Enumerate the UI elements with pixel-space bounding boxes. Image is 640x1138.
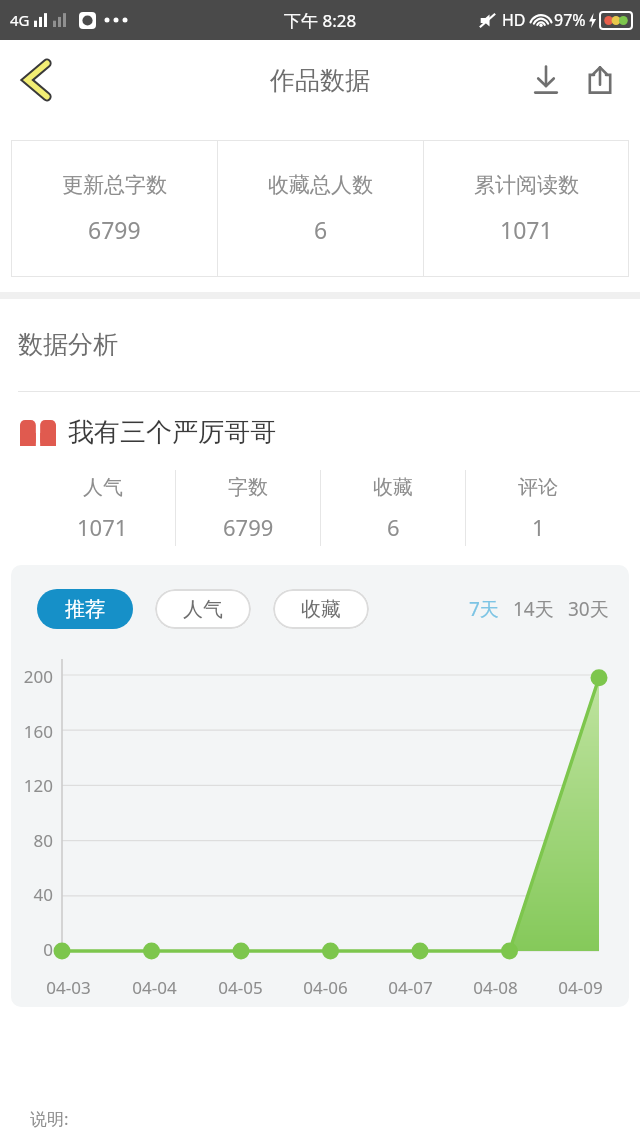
staticText: 收藏总人数 xyxy=(268,172,373,198)
staticText: 人气 xyxy=(183,597,223,622)
staticText: 6 xyxy=(314,214,328,245)
staticText: 更新总字数 xyxy=(62,172,167,198)
staticText: 97% xyxy=(554,9,586,31)
button[interactable]: 14天 xyxy=(513,596,554,622)
staticText: 04-07 xyxy=(388,976,433,999)
staticText: 累计阅读数 xyxy=(474,172,579,198)
staticText: 04-04 xyxy=(132,976,177,999)
staticText: 200 xyxy=(19,665,53,688)
staticText: 6 xyxy=(387,512,400,542)
staticText: 评论 xyxy=(518,475,558,500)
staticText: 40 xyxy=(19,883,53,906)
staticText: 6799 xyxy=(88,214,141,245)
staticText: HD xyxy=(502,9,526,31)
staticText: 我有三个严厉哥哥 xyxy=(68,416,276,449)
staticText: 1071 xyxy=(77,512,128,542)
staticText: 收藏 xyxy=(301,597,341,622)
staticText: 4G xyxy=(10,10,30,30)
staticText: 160 xyxy=(19,720,53,743)
staticText: 说明: xyxy=(30,1107,69,1130)
button[interactable]: 人气 xyxy=(155,589,251,629)
staticText: 04-08 xyxy=(473,976,518,999)
staticText: 1071 xyxy=(500,214,553,245)
staticText: 1 xyxy=(532,512,545,542)
button[interactable]: 7天 xyxy=(469,596,499,622)
staticText: 作品数据 xyxy=(270,65,370,96)
staticText: 120 xyxy=(19,774,53,797)
button[interactable]: Share xyxy=(576,56,624,104)
button[interactable]: 评论 xyxy=(466,465,610,551)
button[interactable]: 人气 xyxy=(30,465,175,551)
staticText: 04-05 xyxy=(218,976,263,999)
button[interactable]: 收藏 xyxy=(273,589,369,629)
button[interactable]: 累计阅读数 xyxy=(424,140,629,277)
button[interactable]: 更新总字数 xyxy=(11,140,217,277)
button[interactable]: 我有三个严厉哥哥 xyxy=(20,416,640,449)
staticText: 0 xyxy=(19,938,53,961)
staticText: 04-09 xyxy=(558,976,603,999)
button[interactable]: 30天 xyxy=(568,596,609,622)
staticText: 收藏 xyxy=(373,475,413,500)
button[interactable]: Back xyxy=(8,51,66,109)
staticText: 04-06 xyxy=(303,976,348,999)
staticText: 6799 xyxy=(223,512,274,542)
button[interactable]: 推荐 xyxy=(37,589,133,629)
staticText: 下午 8:28 xyxy=(284,9,357,32)
staticText: 人气 xyxy=(83,475,123,500)
button[interactable]: 字数 xyxy=(176,465,320,551)
staticText: 04-03 xyxy=(46,976,91,999)
staticText: 80 xyxy=(19,829,53,852)
staticText: 推荐 xyxy=(65,597,105,622)
staticText: 数据分析 xyxy=(18,329,118,360)
staticText: 字数 xyxy=(228,475,268,500)
button[interactable]: Download xyxy=(522,56,570,104)
button[interactable]: 收藏 xyxy=(321,465,465,551)
button[interactable]: 收藏总人数 xyxy=(218,140,423,277)
